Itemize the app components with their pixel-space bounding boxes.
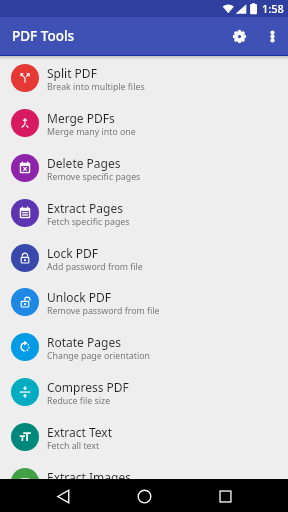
button[interactable]: Home <box>128 480 160 512</box>
button[interactable]: Compress PDF <box>0 369 288 414</box>
button[interactable]: Rotate Pages <box>0 324 288 369</box>
staticText: Remove specific pages <box>47 171 141 183</box>
button[interactable]: Unlock PDF <box>0 279 288 324</box>
button[interactable]: Extract Images <box>0 459 288 504</box>
staticText: Rotate Pages <box>47 334 121 350</box>
staticText: PDF Tools <box>12 27 75 45</box>
staticText: Fetch all images <box>47 485 114 497</box>
staticText: Remove password from file <box>47 305 160 317</box>
staticText: Reduce file size <box>47 395 111 407</box>
staticText: Split PDF <box>47 65 97 81</box>
staticText: Extract Images <box>47 469 131 485</box>
button[interactable]: Merge PDFs <box>0 100 288 145</box>
staticText: Add password from file <box>47 261 143 273</box>
staticText: Extract Pages <box>47 200 123 216</box>
button[interactable]: Extract Text <box>0 414 288 459</box>
staticText: Extract Text <box>47 424 113 440</box>
staticText: Fetch specific pages <box>47 216 130 228</box>
staticText: Unlock PDF <box>47 289 112 305</box>
button[interactable]: Back <box>47 480 79 512</box>
staticText: Compress PDF <box>47 379 129 395</box>
button[interactable]: Split PDF <box>0 55 288 100</box>
staticText: Lock PDF <box>47 245 99 261</box>
staticText: Merge PDFs <box>47 110 115 126</box>
button[interactable]: Recents <box>209 480 241 512</box>
button[interactable]: Lock PDF <box>0 235 288 280</box>
staticText: Fetch all text <box>47 440 100 452</box>
button[interactable]: Extract Pages <box>0 190 288 235</box>
staticText: 1:58 <box>262 1 284 16</box>
staticText: Change page orientation <box>47 350 150 362</box>
staticText: Delete Pages <box>47 155 121 171</box>
staticText: Merge many into one <box>47 126 136 138</box>
button[interactable]: Delete Pages <box>0 145 288 190</box>
button[interactable]: More options <box>259 23 286 50</box>
staticText: Break into multiple files <box>47 81 145 93</box>
button[interactable]: Settings <box>226 23 253 50</box>
